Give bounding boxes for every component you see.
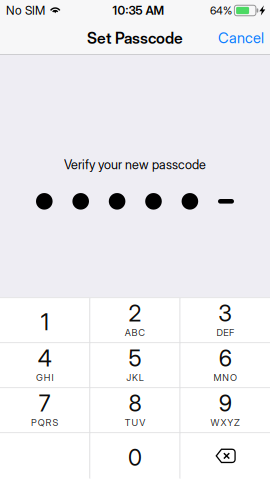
staticText: PQRS [31, 417, 58, 428]
button[interactable]: Delete [180, 433, 270, 478]
staticText: 10:35 AM [112, 3, 164, 18]
button[interactable]: 0 [90, 433, 180, 478]
staticText: 6 [219, 344, 232, 372]
staticText: WXYZ [211, 417, 240, 428]
staticText: MNO [213, 372, 237, 383]
button[interactable]: 6 [180, 343, 270, 387]
staticText: ABC [125, 327, 145, 338]
staticText: 1 [41, 308, 49, 336]
staticText: Set Passcode [87, 29, 183, 47]
staticText: GHI [36, 372, 53, 383]
staticText: 3 [218, 299, 232, 327]
button[interactable]: 2 [90, 298, 180, 342]
staticText: No SIM [6, 3, 45, 18]
button[interactable]: Cancel [212, 21, 270, 55]
staticText: 2 [128, 299, 141, 327]
button[interactable]: 4 [0, 343, 89, 387]
staticText: TUV [125, 417, 145, 428]
staticText: Verify your new passcode [64, 157, 206, 172]
staticText: Cancel [218, 29, 264, 47]
staticText: 8 [128, 389, 141, 417]
button[interactable]: 8 [90, 388, 180, 432]
button[interactable]: 3 [180, 298, 270, 342]
staticText: 9 [219, 389, 232, 417]
button[interactable]: 7 [0, 388, 89, 432]
staticText: DEF [216, 327, 234, 338]
staticText: 5 [128, 344, 141, 372]
button[interactable]: 5 [90, 343, 180, 387]
button[interactable]: 1 [0, 298, 89, 342]
staticText: 7 [39, 389, 51, 417]
staticText: 4 [38, 344, 52, 372]
staticText: JKL [126, 372, 144, 383]
staticText: 64% [210, 4, 232, 17]
staticText: 0 [128, 444, 142, 471]
button[interactable]: 9 [180, 388, 270, 432]
